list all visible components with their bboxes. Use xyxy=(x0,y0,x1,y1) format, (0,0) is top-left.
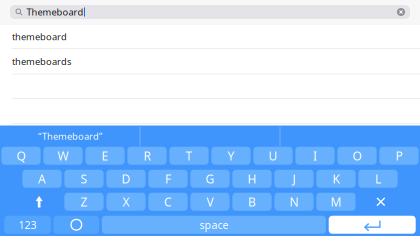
staticText: Y xyxy=(227,148,234,164)
staticText: O xyxy=(352,148,361,164)
button[interactable]: 123 xyxy=(4,216,51,234)
button[interactable]: Return xyxy=(329,216,416,234)
button[interactable]: Shift xyxy=(14,193,64,211)
staticText: Themeboard xyxy=(26,6,83,18)
staticText: V xyxy=(206,194,213,210)
button[interactable]: S xyxy=(64,170,104,188)
staticText: L xyxy=(375,171,381,187)
button[interactable]: T xyxy=(169,147,209,165)
staticText: P xyxy=(395,148,402,164)
staticText: H xyxy=(247,171,256,187)
staticText: J xyxy=(292,171,295,187)
staticText: U xyxy=(268,148,277,164)
staticText: C xyxy=(164,194,172,210)
staticText: S xyxy=(80,171,87,187)
button[interactable]: U xyxy=(253,147,293,165)
staticText: F xyxy=(165,171,171,187)
button[interactable]: J xyxy=(274,170,314,188)
button[interactable]: themeboards xyxy=(0,49,420,74)
staticText: A xyxy=(38,171,46,187)
button[interactable]: space xyxy=(102,216,326,234)
button[interactable]: X xyxy=(106,193,146,211)
staticText: themeboards xyxy=(12,55,71,68)
button[interactable]: V xyxy=(190,193,230,211)
button[interactable]: I xyxy=(295,147,335,165)
button[interactable]: A xyxy=(22,170,62,188)
button[interactable]: Clear search text xyxy=(397,8,405,16)
staticText: D xyxy=(121,171,130,187)
button[interactable]: K xyxy=(316,170,356,188)
staticText: T xyxy=(185,148,192,164)
button[interactable]: “Themeboard” xyxy=(0,126,140,147)
button[interactable] xyxy=(140,126,280,147)
button[interactable]: C xyxy=(148,193,188,211)
staticText: B xyxy=(248,194,256,210)
staticText: E xyxy=(101,148,108,164)
staticText: N xyxy=(289,194,298,210)
button[interactable]: Q xyxy=(1,147,41,165)
staticText: 123 xyxy=(19,218,37,232)
button[interactable]: O xyxy=(337,147,377,165)
button[interactable]: M xyxy=(316,193,356,211)
button[interactable]: D xyxy=(106,170,146,188)
staticText: themeboard xyxy=(12,30,67,43)
button[interactable]: Y xyxy=(211,147,251,165)
button[interactable]: B xyxy=(232,193,272,211)
staticText: I xyxy=(313,148,317,164)
button[interactable]: W xyxy=(43,147,83,165)
button[interactable]: Z xyxy=(64,193,104,211)
staticText: Z xyxy=(80,194,87,210)
staticText: R xyxy=(143,148,150,164)
button[interactable]: G xyxy=(190,170,230,188)
button[interactable]: N xyxy=(274,193,314,211)
staticText: X xyxy=(122,194,129,210)
staticText: M xyxy=(330,194,341,210)
button[interactable]: Next keyboard xyxy=(54,216,99,234)
button[interactable] xyxy=(0,74,420,99)
button[interactable]: themeboard xyxy=(0,25,420,49)
staticText: space xyxy=(199,218,228,232)
button[interactable]: R xyxy=(127,147,167,165)
button[interactable]: L xyxy=(358,170,398,188)
staticText: W xyxy=(57,148,68,164)
button[interactable]: E xyxy=(85,147,125,165)
staticText: “Themeboard” xyxy=(38,130,102,142)
button[interactable]: H xyxy=(232,170,272,188)
staticText: Q xyxy=(16,148,25,164)
button[interactable]: Delete xyxy=(356,193,406,211)
staticText: K xyxy=(332,171,339,187)
button[interactable]: P xyxy=(379,147,419,165)
button[interactable]: F xyxy=(148,170,188,188)
staticText: G xyxy=(205,171,214,187)
